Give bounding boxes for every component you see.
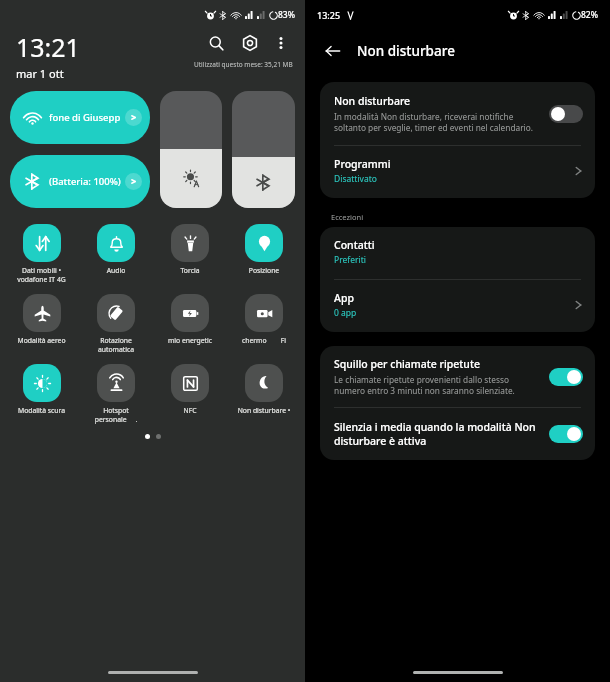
staticText: Utilizzati questo mese: 35,21 MB xyxy=(194,60,293,69)
staticText: mar 1 ott xyxy=(16,66,64,81)
staticText: Torcia xyxy=(153,266,227,275)
staticText: Rotazione automatica xyxy=(79,336,153,354)
button[interactable]: NFC xyxy=(153,362,227,417)
button[interactable]: Non disturbare xyxy=(320,82,595,145)
staticText: chermo Fi xyxy=(227,336,301,345)
staticText: 13:21 xyxy=(16,30,80,64)
staticText: Le chiamate ripetute provenienti dallo s… xyxy=(334,374,539,396)
button[interactable]: (Batteria: 100%) xyxy=(10,155,150,208)
button[interactable]: Audio xyxy=(79,222,153,277)
staticText: Hotspot personale . xyxy=(79,406,153,424)
staticText: 13:25 xyxy=(317,9,341,21)
button[interactable]: Cerca xyxy=(203,30,229,56)
button[interactable]: Impostazioni xyxy=(237,30,263,56)
staticText: In modalità Non disturbare, riceverai no… xyxy=(334,111,539,133)
staticText: Programmi xyxy=(334,157,391,171)
staticText: Audio xyxy=(79,266,153,275)
staticText: fone di Giusepp xyxy=(49,111,125,124)
staticText: Dati mobili • vodafone IT 4G xyxy=(4,266,79,284)
staticText: Disattivato xyxy=(334,173,377,185)
button[interactable]: Dati mobili • vodafone IT 4G xyxy=(4,222,79,286)
button[interactable]: Squillo per chiamate ripetute xyxy=(320,346,595,407)
staticText: 82% xyxy=(581,9,598,21)
button[interactable]: Disattivato xyxy=(549,105,583,123)
button[interactable]: Modalità aereo xyxy=(4,292,79,347)
staticText: mio energetic xyxy=(153,336,227,345)
button[interactable]: Luminosità xyxy=(160,91,222,208)
button[interactable]: Posizione xyxy=(227,222,301,277)
button[interactable]: Modalità scura xyxy=(4,362,79,417)
button[interactable]: Attivato xyxy=(549,368,583,386)
button[interactable]: mio energetic xyxy=(153,292,227,347)
staticText: App xyxy=(334,291,354,305)
staticText: Non disturbare • xyxy=(227,406,301,415)
staticText: 83% xyxy=(278,9,295,21)
button[interactable]: Volume Bluetooth xyxy=(232,91,295,208)
button[interactable]: Attivato xyxy=(549,425,583,443)
button[interactable]: chermo Fi xyxy=(227,292,301,347)
staticText: Squillo per chiamate ripetute xyxy=(334,357,481,371)
staticText: Modalità scura xyxy=(4,406,79,415)
button[interactable]: Non disturbare • xyxy=(227,362,301,417)
staticText: Eccezioni xyxy=(331,212,364,222)
staticText: Non disturbare xyxy=(334,94,411,108)
staticText: NFC xyxy=(153,406,227,415)
button[interactable]: Indietro xyxy=(319,37,347,65)
button[interactable]: Rotazione automatica xyxy=(79,292,153,356)
button[interactable]: Contatti xyxy=(320,227,595,279)
button[interactable]: Torcia xyxy=(153,222,227,277)
button[interactable]: Altre opzioni xyxy=(269,31,293,55)
button[interactable]: Hotspot personale . xyxy=(79,362,153,426)
staticText: 0 app xyxy=(334,307,357,319)
button[interactable]: App xyxy=(320,280,595,332)
staticText: Modalità aereo xyxy=(4,336,79,345)
staticText: Contatti xyxy=(334,238,375,252)
button[interactable]: Silenzia i media quando la modalità Non … xyxy=(320,408,595,460)
staticText: Posizione xyxy=(227,266,301,275)
staticText: Non disturbare xyxy=(357,42,455,60)
button[interactable]: Programmi xyxy=(320,146,595,198)
staticText: Preferiti xyxy=(334,254,366,266)
staticText: Silenzia i media quando la modalità Non … xyxy=(334,420,539,448)
staticText: (Batteria: 100%) xyxy=(49,175,125,188)
button[interactable]: fone di Giusepp xyxy=(10,91,150,144)
